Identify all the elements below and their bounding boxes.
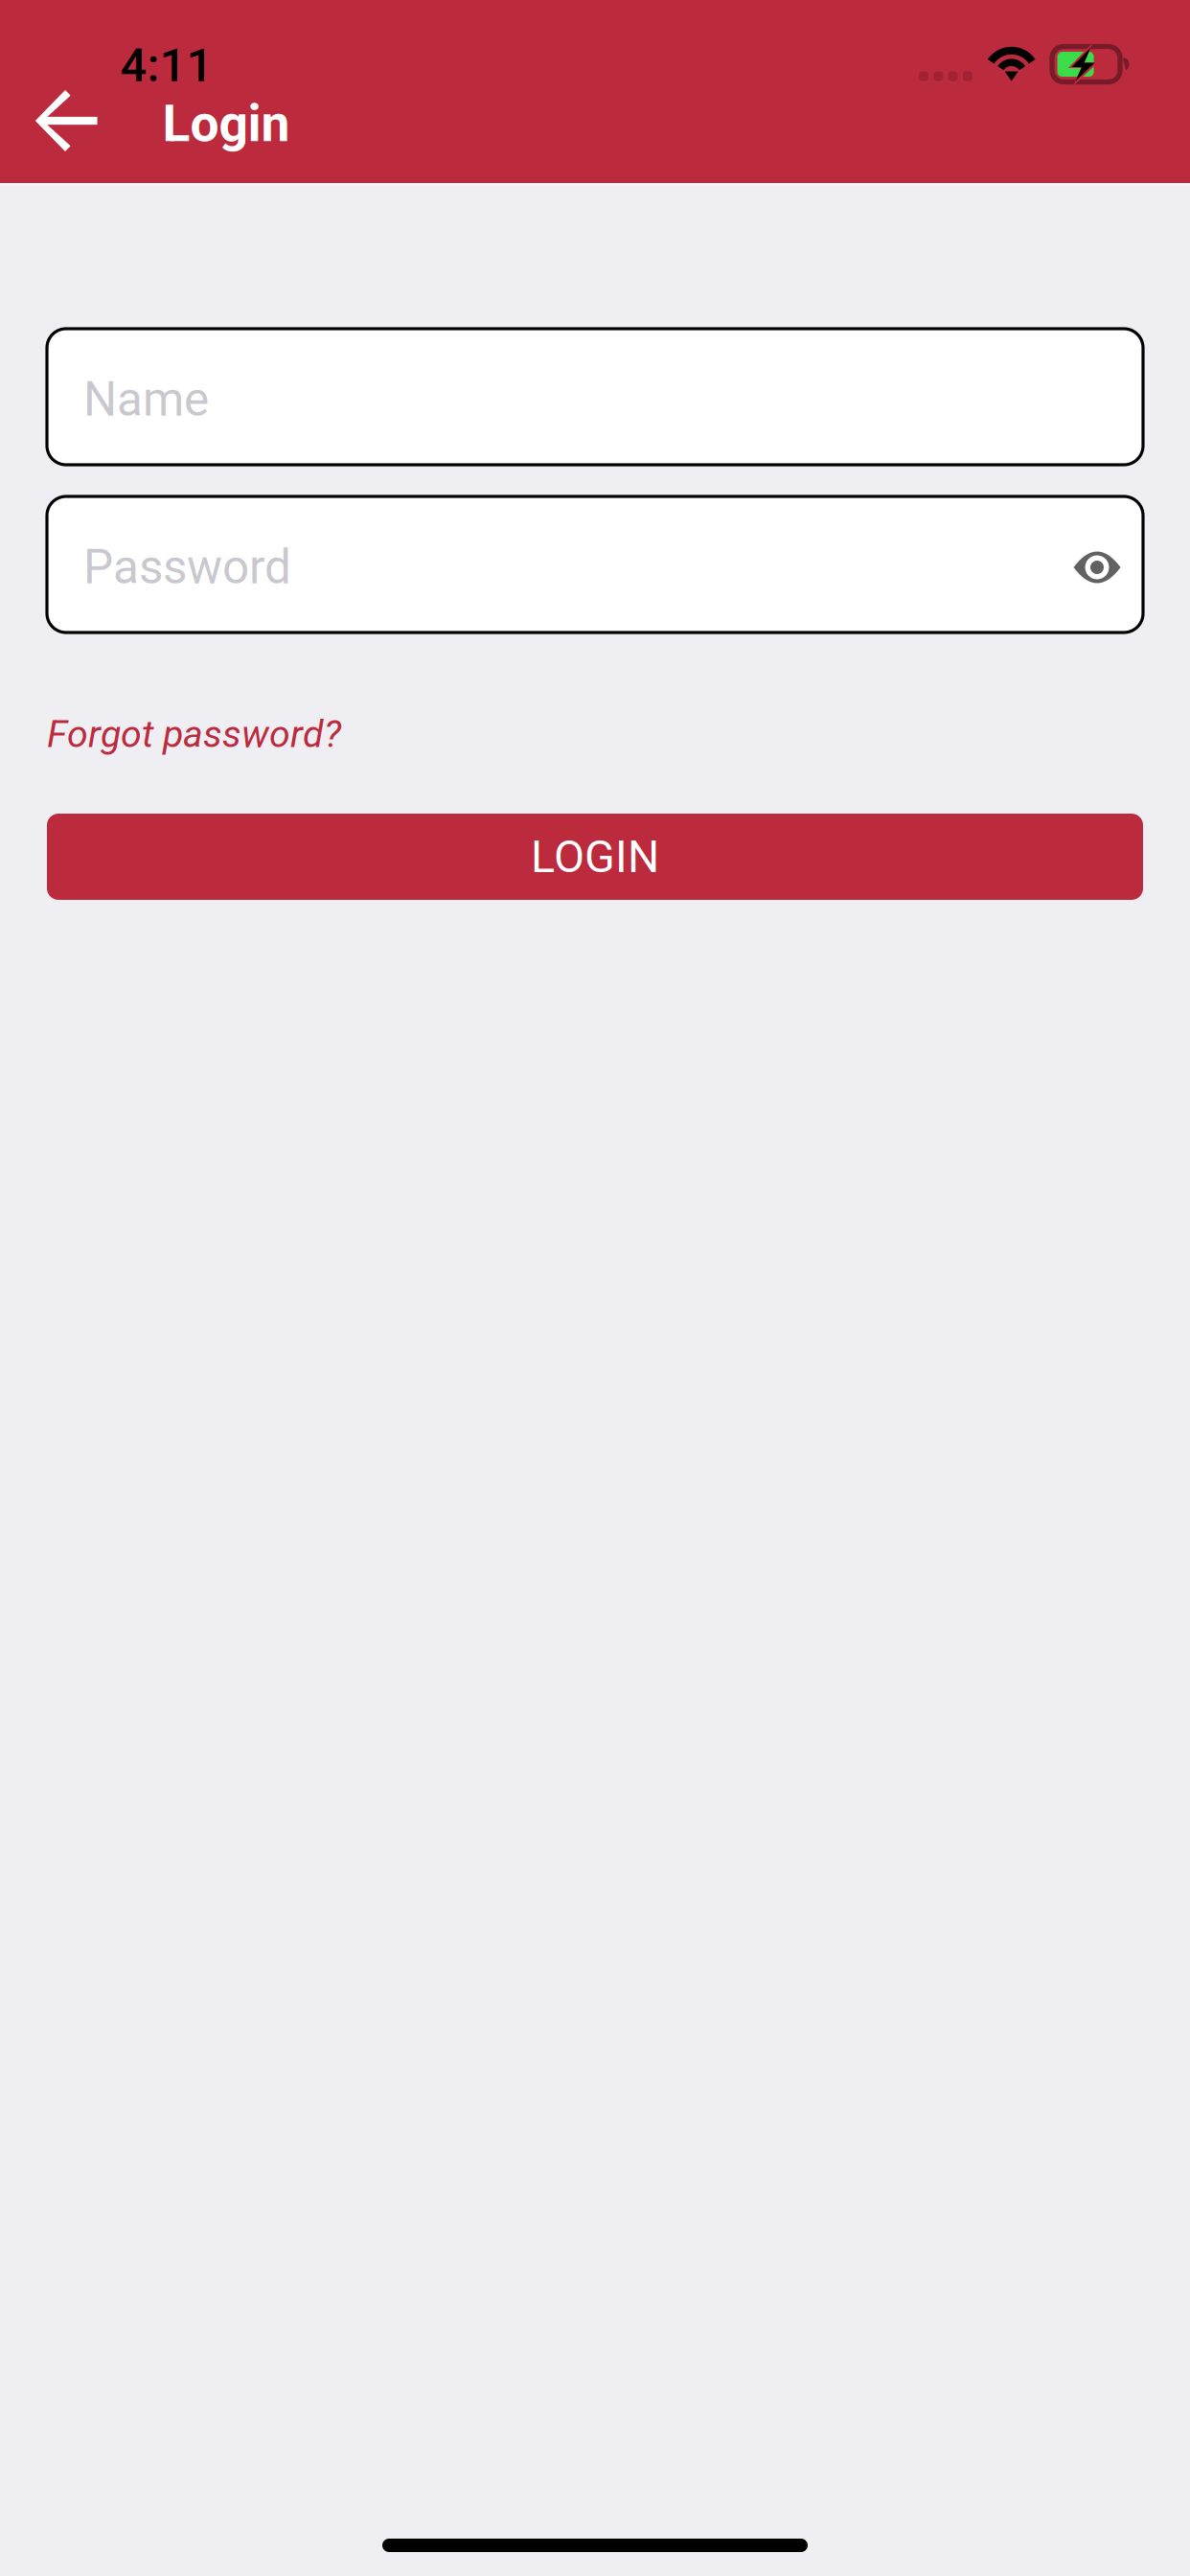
staticText: Password	[83, 540, 291, 595]
staticText: LOGIN	[531, 831, 659, 883]
staticText: Login	[162, 94, 290, 154]
button[interactable]: Back	[13, 68, 119, 173]
button[interactable]: Forgot password?	[47, 712, 341, 756]
staticText: Forgot password?	[47, 712, 341, 756]
staticText: 4:11	[120, 38, 213, 92]
staticText: Name	[83, 372, 209, 427]
button[interactable]: LOGIN	[47, 814, 1143, 900]
button[interactable]: Show password	[1063, 530, 1132, 599]
